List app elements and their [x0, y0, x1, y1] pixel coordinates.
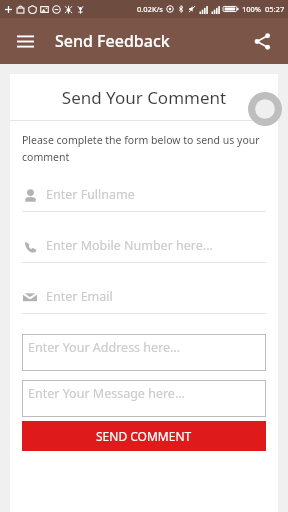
staticText: Enter Email	[46, 288, 113, 305]
staticText: SEND COMMENT	[96, 428, 192, 444]
staticText: 100%	[242, 4, 262, 14]
staticText: 05:27	[265, 4, 285, 14]
staticText: Please complete the form below to send u…	[22, 133, 266, 164]
button[interactable]: Enter Email	[22, 288, 266, 314]
staticText: Send Feedback	[55, 30, 170, 52]
button[interactable]: Enter Fullname	[22, 186, 266, 212]
staticText: Enter Your Message here...	[28, 385, 185, 402]
staticText: Send Your Comment	[10, 86, 278, 109]
button[interactable]: Enter Mobile Number here...	[22, 237, 266, 263]
button[interactable]: Enter Your Message here...	[22, 380, 266, 417]
staticText: Enter Mobile Number here...	[46, 237, 213, 254]
button[interactable]: Share	[243, 22, 281, 60]
staticText: 0.02K/s	[137, 4, 163, 14]
button[interactable]: SEND COMMENT	[22, 421, 266, 451]
staticText: Enter Fullname	[46, 186, 135, 203]
button[interactable]: Open navigation menu	[6, 22, 44, 60]
button[interactable]: Enter Your Address here...	[22, 334, 266, 371]
staticText: Enter Your Address here...	[28, 339, 181, 356]
